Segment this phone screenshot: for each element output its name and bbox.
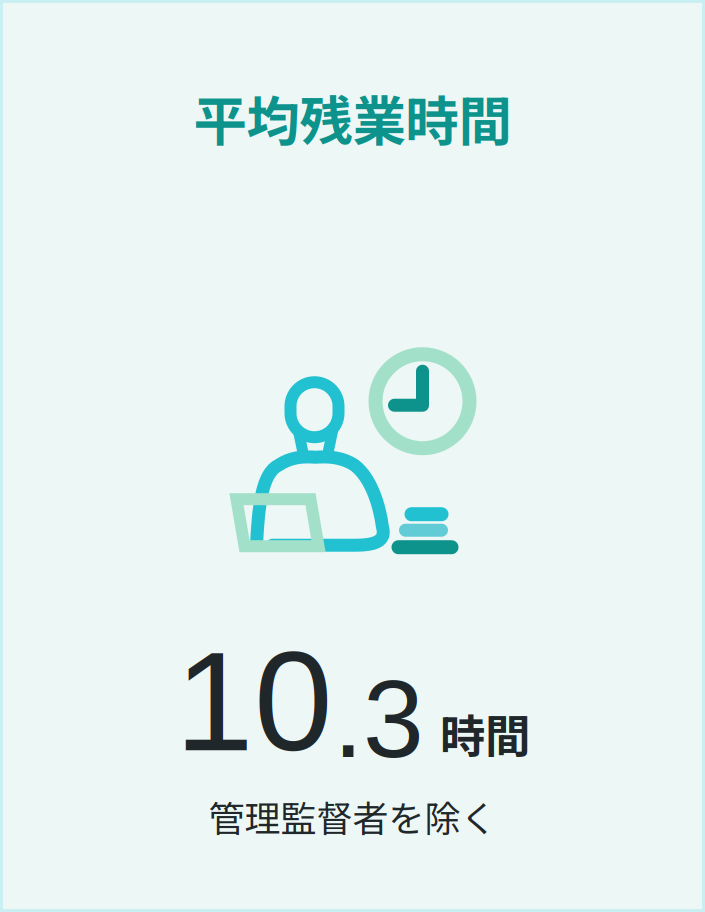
staticText: 平均残業時間 bbox=[193, 79, 511, 156]
staticText: 時間 bbox=[440, 700, 530, 766]
staticText: .3 bbox=[333, 658, 424, 780]
staticText: 管理監督者を除く bbox=[208, 790, 496, 842]
staticText: 10 bbox=[175, 622, 333, 780]
